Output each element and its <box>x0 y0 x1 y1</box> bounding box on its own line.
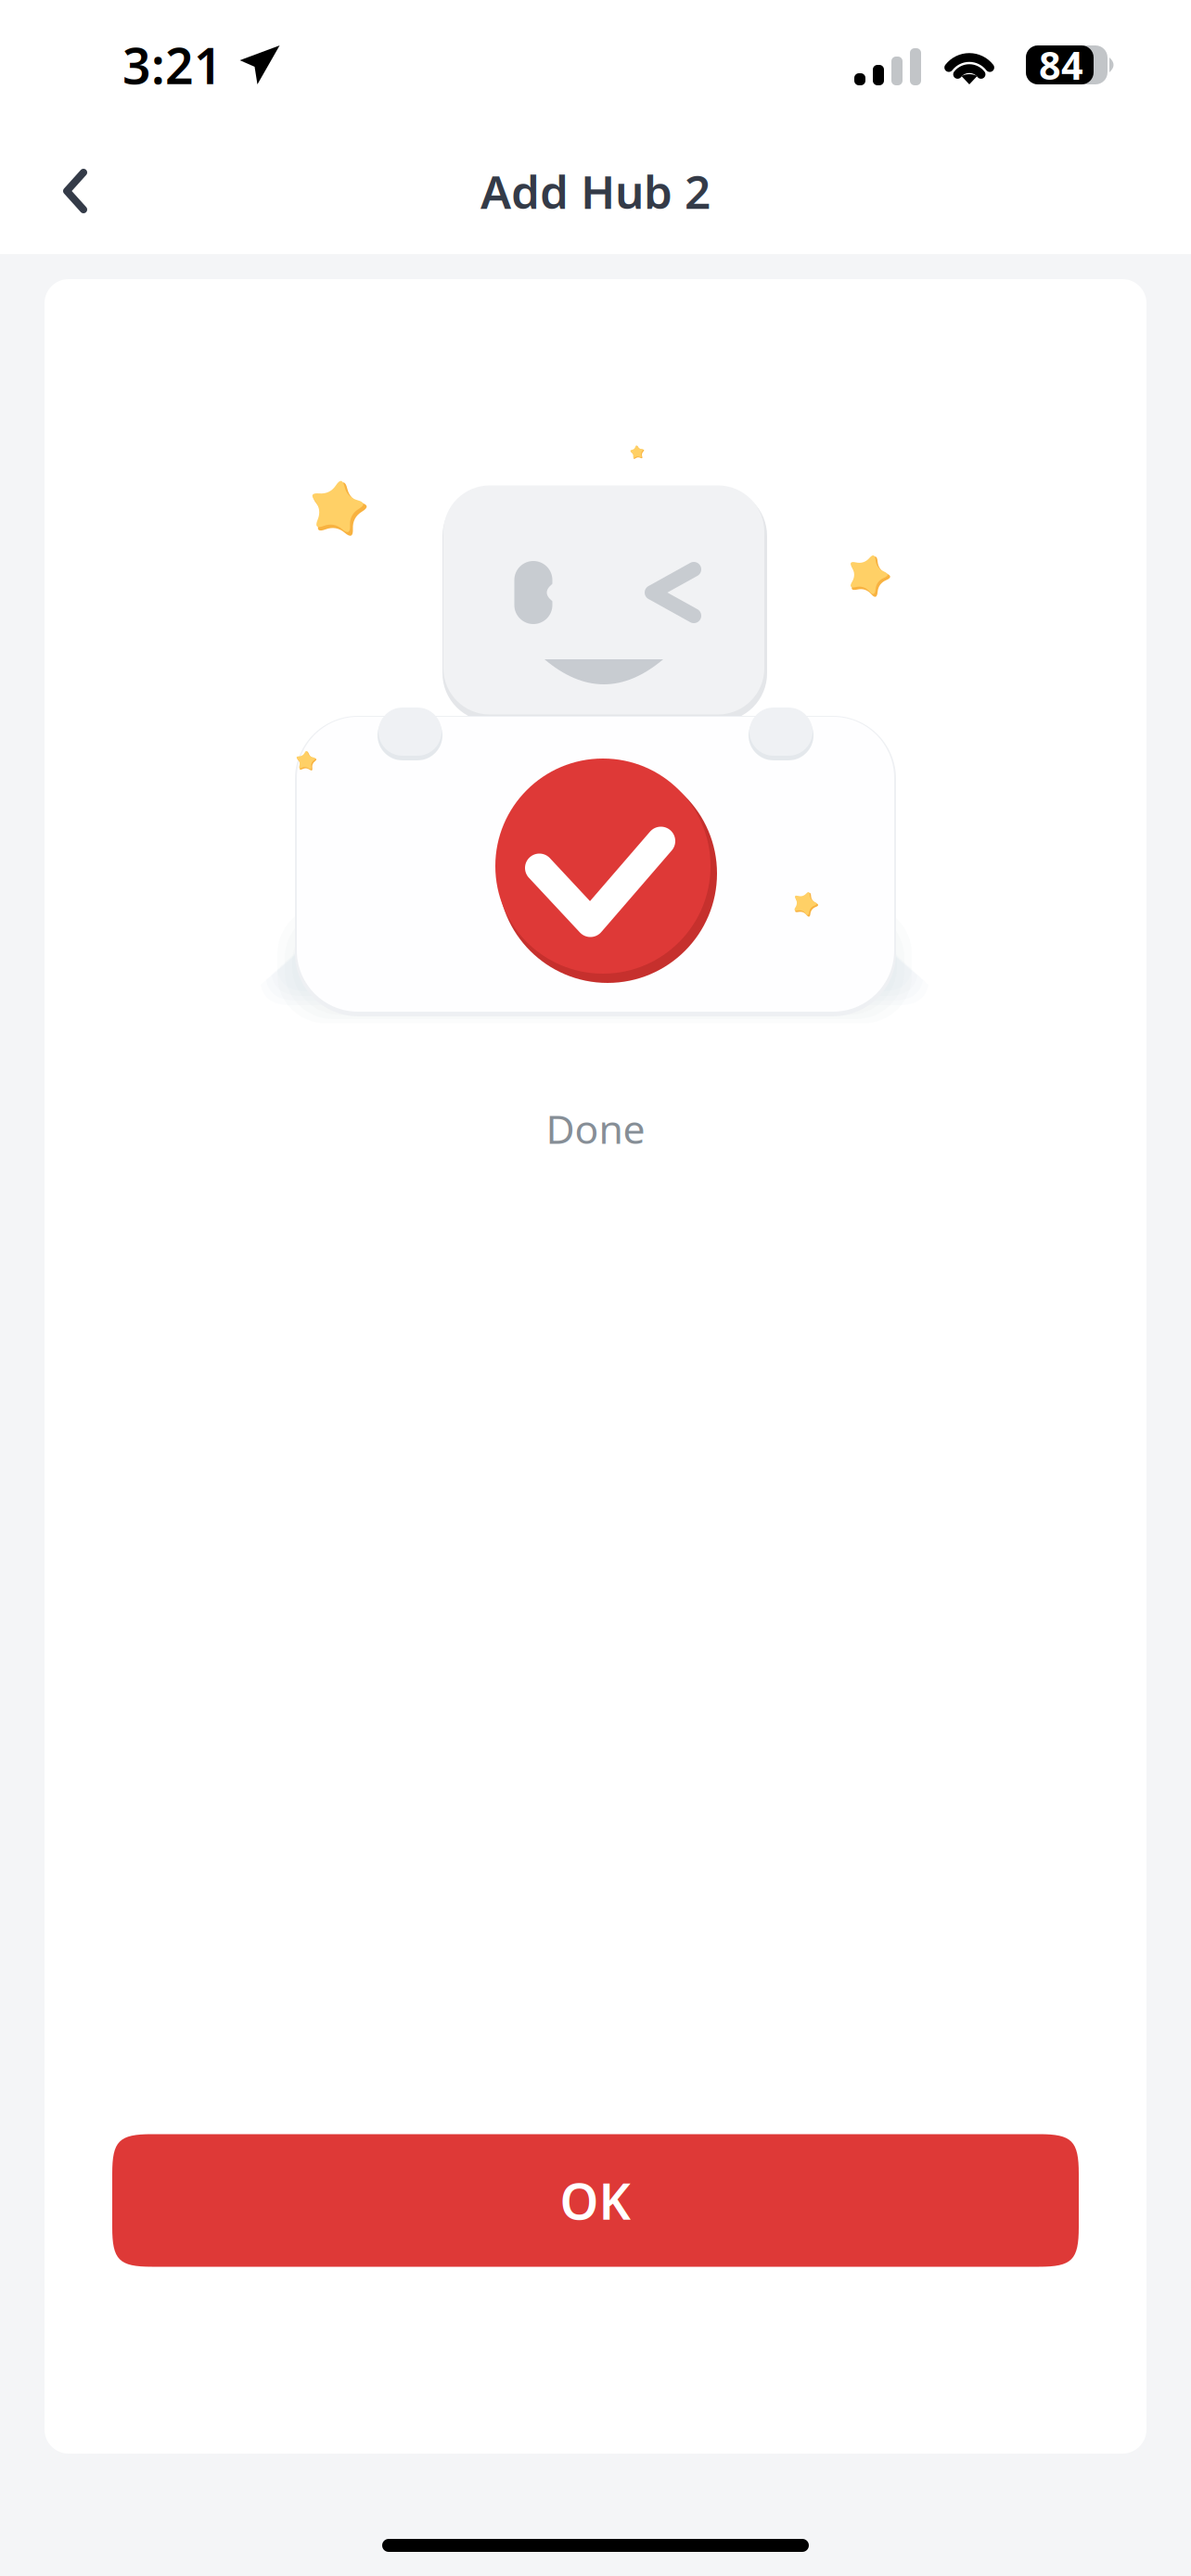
staticText: 84 <box>1039 40 1083 90</box>
button[interactable]: OK <box>112 2134 1079 2267</box>
button[interactable]: Back <box>31 136 120 246</box>
staticText: Done <box>546 1102 645 1155</box>
staticText: OK <box>560 2168 631 2233</box>
staticText: 3:21 <box>122 32 223 98</box>
staticText: Add Hub 2 <box>480 161 711 221</box>
